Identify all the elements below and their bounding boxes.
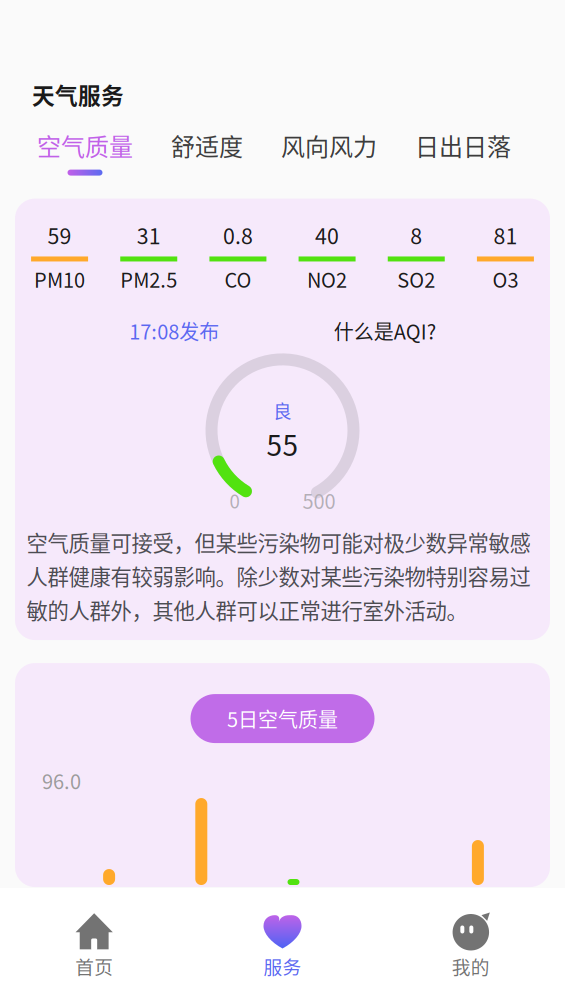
staticText: CO bbox=[224, 264, 251, 293]
staticText: 500 bbox=[302, 486, 335, 515]
button[interactable]: 空气质量 bbox=[18, 128, 152, 176]
staticText: 我的 bbox=[452, 952, 490, 979]
staticText: PM2.5 bbox=[120, 264, 177, 293]
staticText: 服务 bbox=[263, 952, 301, 979]
staticText: NO2 bbox=[307, 264, 347, 293]
staticText: SO2 bbox=[397, 264, 435, 293]
staticText: 31 bbox=[137, 220, 161, 250]
staticText: 81 bbox=[493, 220, 517, 250]
staticText: 59 bbox=[48, 220, 72, 250]
staticText: 空气质量可接受，但某些污染物可能对极少数异常敏感人群健康有较弱影响。除少数对某些… bbox=[26, 526, 530, 625]
staticText: O3 bbox=[492, 264, 518, 293]
staticText: 舒适度 bbox=[171, 128, 243, 163]
button[interactable]: 日出日落 bbox=[396, 128, 530, 176]
button[interactable]: 5日空气质量 bbox=[190, 694, 374, 743]
staticText: 风向风力 bbox=[281, 128, 377, 163]
staticText: 55 bbox=[266, 424, 298, 464]
staticText: 日出日落 bbox=[415, 128, 511, 163]
staticText: 0.8 bbox=[223, 220, 253, 250]
button[interactable]: 首页 bbox=[0, 912, 188, 979]
staticText: 5日空气质量 bbox=[227, 704, 338, 733]
button[interactable]: 我的 bbox=[377, 912, 565, 979]
staticText: 首页 bbox=[75, 952, 113, 979]
staticText: 空气质量 bbox=[37, 128, 133, 163]
button[interactable]: 舒适度 bbox=[152, 128, 262, 176]
staticText: 96.0 bbox=[42, 766, 81, 795]
staticText: 40 bbox=[315, 220, 339, 250]
button[interactable]: 风向风力 bbox=[262, 128, 396, 176]
staticText: 天气服务 bbox=[32, 78, 124, 111]
staticText: 8 bbox=[410, 220, 422, 250]
staticText: 良 bbox=[273, 397, 292, 424]
staticText: 17:08发布 bbox=[129, 316, 219, 345]
staticText: 什么是AQI? bbox=[334, 316, 436, 345]
button[interactable]: 服务 bbox=[188, 912, 377, 979]
staticText: 0 bbox=[229, 487, 239, 514]
staticText: PM10 bbox=[34, 264, 85, 293]
